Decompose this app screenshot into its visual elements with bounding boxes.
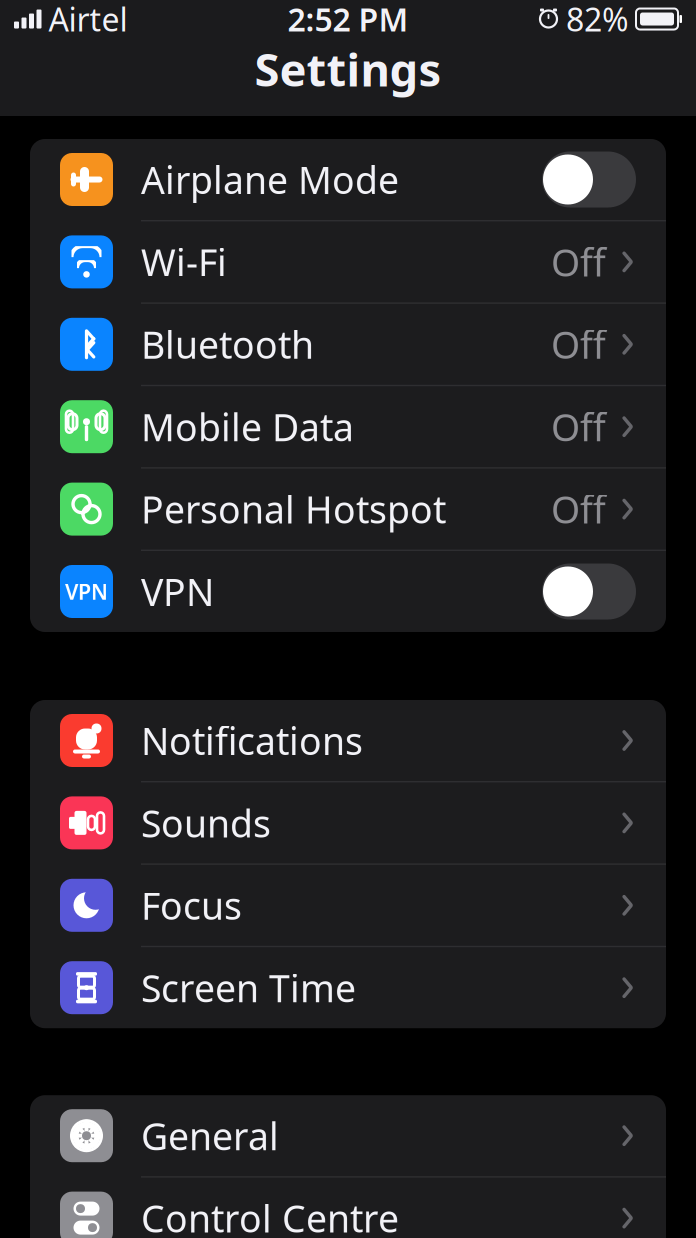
button[interactable]: Wi-Fi <box>30 221 666 304</box>
staticText: Wi-Fi <box>141 237 227 287</box>
button[interactable]: Focus <box>30 865 666 947</box>
button[interactable]: Personal Hotspot <box>30 469 666 551</box>
staticText: General <box>141 1111 279 1160</box>
button[interactable]: Notifications <box>30 700 666 782</box>
staticText: VPN <box>65 577 108 606</box>
staticText: 2:52 PM <box>287 0 408 40</box>
staticText: Off <box>551 319 606 369</box>
staticText: Mobile Data <box>141 402 354 451</box>
button[interactable]: Mobile Data <box>30 386 666 469</box>
staticText: Airplane Mode <box>141 155 399 204</box>
staticText: Focus <box>141 880 242 930</box>
staticText: Settings <box>254 39 441 99</box>
staticText: Screen Time <box>141 963 356 1012</box>
staticText: Notifications <box>141 716 363 765</box>
staticText: Off <box>551 237 606 287</box>
staticText: Off <box>551 402 606 451</box>
button[interactable]: VPN <box>30 551 666 632</box>
staticText: Sounds <box>141 798 271 848</box>
button[interactable]: Bluetooth <box>30 304 666 386</box>
staticText: Bluetooth <box>141 319 314 369</box>
staticText: VPN <box>141 567 214 616</box>
button[interactable]: Screen Time <box>30 947 666 1028</box>
staticText: Control Centre <box>141 1193 399 1238</box>
button[interactable]: Sounds <box>30 782 666 865</box>
staticText: Airtel <box>48 0 127 40</box>
button[interactable]: Airplane Mode <box>30 139 666 221</box>
button[interactable]: Control Centre <box>30 1178 666 1238</box>
staticText: Off <box>551 484 606 534</box>
staticText: 82% <box>566 0 629 40</box>
button[interactable]: General <box>30 1095 666 1178</box>
staticText: Personal Hotspot <box>141 484 446 534</box>
